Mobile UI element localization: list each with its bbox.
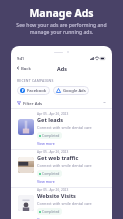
staticText: Get web traffic xyxy=(37,154,79,162)
staticText: Apr 05 - Apr 26, 2023 xyxy=(37,112,69,116)
staticText: Connect with smile dental care xyxy=(37,163,92,168)
staticText: Back xyxy=(21,65,31,71)
button[interactable]: Apr 05 - Apr 26, 2023 xyxy=(11,112,112,150)
staticText: Google Ads xyxy=(63,88,86,94)
staticText: 9:41 xyxy=(17,56,25,61)
button[interactable]: View more xyxy=(37,179,55,184)
staticText: Connect with smile dental care xyxy=(37,201,92,206)
staticText: Website Visits xyxy=(37,192,76,200)
button[interactable]: Back xyxy=(16,65,31,71)
other: Expand xyxy=(103,101,106,104)
staticText: Completed xyxy=(42,209,60,214)
staticText: Apr 05 - Apr 26, 2023 xyxy=(37,150,69,154)
button[interactable]: Filter Ads xyxy=(17,98,106,107)
staticText: Get leads xyxy=(37,116,63,124)
staticText: RECENT CAMPAIGNS xyxy=(17,78,54,83)
staticText: Filter Ads xyxy=(23,100,43,106)
button[interactable]: Apr 05 - Apr 26, 2023 xyxy=(11,188,112,219)
staticText: See how your ads are performing and mana… xyxy=(0,22,123,36)
staticText: Apr 05 - Apr 26, 2023 xyxy=(37,188,69,192)
staticText: Completed xyxy=(42,133,60,138)
button[interactable]: Google Ads xyxy=(53,86,89,95)
staticText: Ads xyxy=(57,65,67,72)
staticText: Completed xyxy=(42,171,60,176)
button[interactable]: f xyxy=(17,86,50,95)
staticText: Connect with smile dental care xyxy=(37,125,92,130)
button[interactable]: View more xyxy=(37,217,55,219)
staticText: Manage Ads xyxy=(0,6,123,20)
staticText: Facebook xyxy=(27,88,47,94)
staticText: f xyxy=(22,88,24,93)
button[interactable]: View more xyxy=(37,141,55,146)
other: Back xyxy=(16,66,20,70)
button[interactable]: Apr 05 - Apr 26, 2023 xyxy=(11,150,112,188)
